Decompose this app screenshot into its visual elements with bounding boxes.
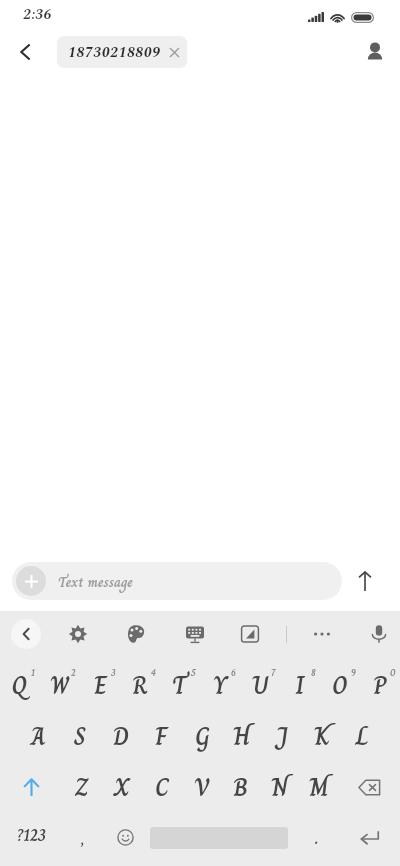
staticText: S [74, 717, 86, 756]
button[interactable]: J [262, 711, 302, 762]
button[interactable]: P [360, 660, 400, 711]
staticText: V [194, 768, 210, 807]
button[interactable]: Q [0, 660, 40, 711]
button[interactable]: W [40, 660, 80, 711]
staticText: Y [213, 666, 228, 705]
button[interactable]: Text message [12, 562, 342, 600]
staticText: 9 [351, 665, 356, 680]
button[interactable]: Emoji [104, 812, 146, 863]
button[interactable]: Back [0, 31, 52, 73]
staticText: 2 [71, 665, 76, 680]
staticText: 4 [151, 665, 156, 680]
staticText: I [295, 666, 305, 705]
button[interactable]: V [182, 762, 221, 812]
staticText: Text message [58, 570, 133, 593]
staticText: L [356, 717, 369, 756]
staticText: ?123 [17, 822, 46, 848]
button[interactable]: Contact profile [350, 31, 400, 73]
button[interactable]: A [18, 711, 59, 762]
button[interactable]: . [296, 812, 338, 863]
staticText: 2:36 [23, 3, 53, 26]
button[interactable]: Close toolbar [11, 619, 41, 649]
staticText: P [373, 666, 388, 705]
button[interactable]: More options [306, 618, 338, 650]
button[interactable]: M [299, 762, 338, 812]
button[interactable]: G [182, 711, 222, 762]
staticText: 8 [311, 665, 316, 680]
button[interactable]: Voice input [363, 618, 395, 650]
button[interactable]: Shift [0, 762, 62, 812]
staticText: K [314, 717, 330, 756]
button[interactable]: Send [342, 561, 388, 601]
button[interactable]: S [59, 711, 100, 762]
button[interactable]: N [260, 762, 299, 812]
staticText: N [271, 768, 289, 807]
button[interactable]: Enter [343, 812, 395, 863]
staticText: 0 [390, 665, 396, 680]
button[interactable]: U [240, 660, 280, 711]
staticText: E [94, 666, 107, 705]
button[interactable]: Y [200, 660, 240, 711]
staticText: F [155, 717, 168, 756]
staticText: A [31, 717, 46, 756]
staticText: 18730218809 [68, 41, 161, 64]
staticText: 1 [31, 665, 35, 680]
button[interactable]: X [102, 762, 142, 812]
button[interactable]: 18730218809 [57, 36, 187, 68]
staticText: D [113, 717, 129, 756]
button[interactable]: B [221, 762, 260, 812]
staticText: G [195, 717, 210, 756]
button[interactable]: O [320, 660, 360, 711]
button[interactable]: H [222, 711, 262, 762]
staticText: C [155, 768, 169, 807]
staticText: . [315, 825, 319, 851]
staticText: 7 [271, 665, 276, 680]
staticText: R [132, 666, 148, 705]
button[interactable]: Settings [62, 618, 94, 650]
staticText: M [309, 768, 329, 807]
staticText: , [81, 825, 85, 851]
button[interactable]: ?123 [0, 809, 62, 860]
button[interactable]: F [141, 711, 182, 762]
staticText: W [50, 666, 70, 705]
staticText: 5 [191, 665, 196, 680]
button[interactable]: K [302, 711, 342, 762]
staticText: H [233, 717, 251, 756]
staticText: 3 [111, 665, 116, 680]
button[interactable]: Keyboard layout [179, 618, 211, 650]
staticText: Z [75, 768, 89, 807]
button[interactable]: R [120, 660, 160, 711]
staticText: Q [12, 666, 28, 705]
button[interactable]: Delete [338, 762, 400, 812]
button[interactable]: T [160, 660, 200, 711]
staticText: T [172, 666, 188, 705]
button[interactable]: E [80, 660, 120, 711]
staticText: U [252, 666, 269, 705]
staticText: O [332, 666, 348, 705]
staticText: B [233, 768, 248, 807]
button[interactable]: Z [62, 762, 102, 812]
staticText: J [276, 717, 288, 756]
button[interactable]: D [100, 711, 141, 762]
button[interactable]: L [342, 711, 382, 762]
button[interactable]: Theme [120, 618, 152, 650]
staticText: 6 [231, 665, 236, 680]
button[interactable]: Handwriting [234, 618, 266, 650]
button[interactable]: , [62, 812, 104, 863]
button[interactable]: I [280, 660, 320, 711]
staticText: X [114, 768, 130, 807]
button[interactable]: C [142, 762, 182, 812]
